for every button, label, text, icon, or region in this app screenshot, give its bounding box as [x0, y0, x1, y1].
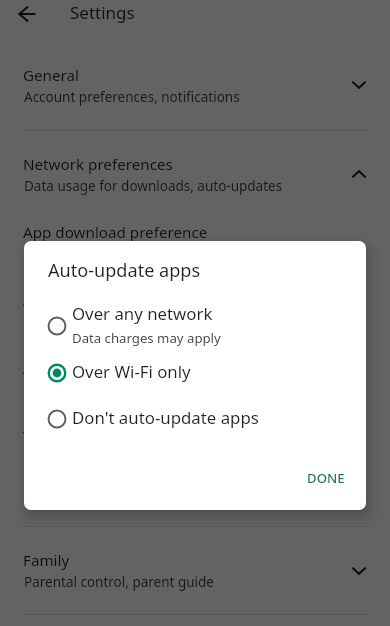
button[interactable] — [0, 199, 390, 261]
button[interactable]: Expand — [335, 547, 383, 595]
staticText: Parental control, parent guide — [24, 573, 214, 591]
button[interactable] — [24, 353, 366, 399]
staticText: Over Wi-Fi only — [24, 381, 120, 399]
button[interactable]: Collapse — [335, 150, 383, 198]
staticText: Auto-update apps — [23, 290, 151, 311]
staticText: Over any network — [72, 302, 213, 325]
staticText: General — [23, 65, 79, 86]
button[interactable] — [24, 297, 366, 353]
staticText: Settings — [70, 1, 135, 24]
staticText: Don't auto-update apps — [72, 406, 259, 429]
staticText: Data usage for downloads, auto-updates — [24, 177, 283, 195]
staticText: Over Wi-Fi only — [72, 360, 191, 383]
staticText: Family — [23, 550, 70, 571]
button[interactable] — [24, 399, 366, 445]
staticText: App download preference — [23, 222, 208, 243]
button[interactable] — [0, 261, 390, 323]
staticText: Data charges may apply — [72, 329, 221, 347]
button[interactable]: Expand — [335, 354, 383, 402]
button[interactable] — [0, 323, 390, 385]
staticText: Auto-update apps — [48, 258, 201, 283]
button[interactable] — [0, 385, 390, 447]
staticText: Account preferences, notifications — [24, 88, 240, 106]
button[interactable]: Expand — [335, 422, 383, 470]
staticText: Auto-play videos — [23, 358, 142, 379]
button[interactable] — [0, 131, 390, 199]
staticText: Over Wi-Fi only — [24, 313, 120, 331]
button[interactable]: Expand — [335, 286, 383, 334]
button[interactable] — [0, 527, 390, 615]
button[interactable] — [0, 56, 390, 130]
button[interactable] — [299, 463, 351, 499]
button[interactable]: Back — [3, 0, 51, 38]
staticText: Theme — [23, 426, 73, 447]
staticText: DONE — [307, 469, 345, 487]
staticText: Network preferences — [23, 154, 173, 175]
button[interactable]: Expand — [335, 61, 383, 109]
